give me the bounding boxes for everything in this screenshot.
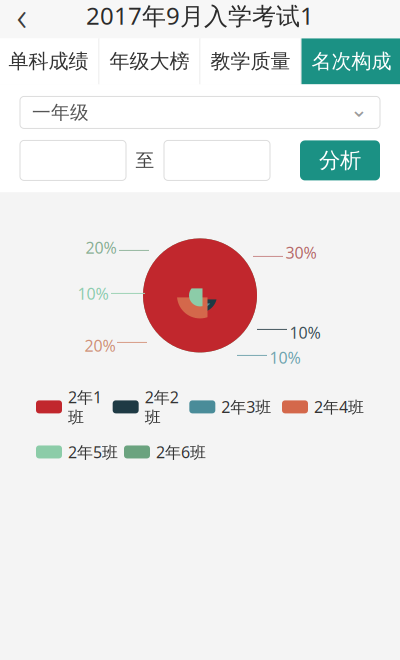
staticText: ‹: [16, 0, 27, 42]
button[interactable]: 单科成绩: [0, 38, 98, 84]
staticText: 教学质量: [210, 49, 290, 74]
button[interactable]: 名次构成: [301, 38, 400, 84]
staticText: 名次构成: [311, 49, 391, 74]
staticText: 2年1班: [68, 386, 102, 427]
staticText: 20%: [85, 237, 116, 258]
staticText: 至: [135, 149, 154, 172]
button[interactable]: Start rank: [20, 140, 126, 180]
staticText: 分析: [319, 147, 361, 173]
staticText: 2017年9月入学考试1: [86, 0, 314, 31]
staticText: 一年级: [32, 101, 89, 124]
button[interactable]: End rank: [164, 140, 270, 180]
button[interactable]: 分析: [300, 140, 380, 180]
staticText: 10%: [77, 283, 108, 304]
staticText: 年级大榜: [109, 49, 189, 74]
staticText: 2年6班: [156, 441, 206, 462]
staticText: 2年4班: [314, 396, 364, 417]
staticText: 2年2班: [145, 386, 179, 427]
staticText: 2年5班: [68, 441, 118, 462]
staticText: 10%: [269, 347, 300, 368]
staticText: 10%: [289, 322, 320, 343]
staticText: ⌄: [350, 97, 368, 121]
button[interactable]: Back: [0, 0, 44, 37]
button[interactable]: 一年级: [20, 96, 380, 128]
button[interactable]: 年级大榜: [99, 38, 199, 84]
staticText: 30%: [285, 242, 316, 263]
staticText: 2年3班: [221, 396, 271, 417]
staticText: 20%: [84, 335, 115, 356]
staticText: 单科成绩: [8, 49, 88, 74]
button[interactable]: 教学质量: [200, 38, 300, 84]
